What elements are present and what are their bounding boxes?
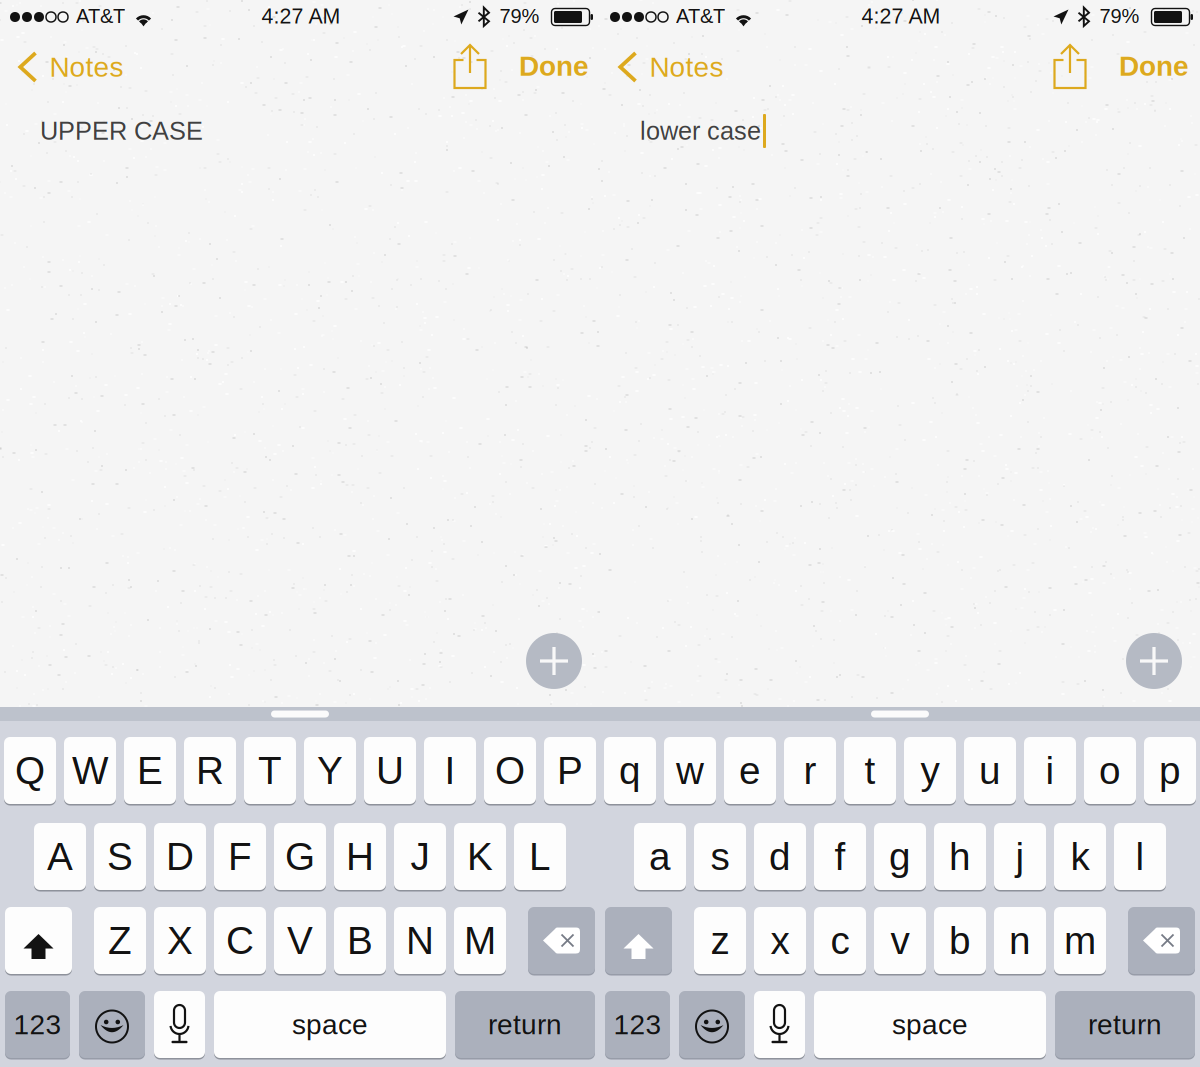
staticText: Done (519, 50, 589, 82)
button[interactable]: o (1084, 735, 1136, 805)
staticText: e (739, 749, 761, 792)
staticText: l (1135, 835, 1144, 878)
staticText: H (346, 835, 374, 878)
button[interactable]: V (274, 905, 326, 975)
button[interactable]: g (874, 821, 926, 891)
button[interactable]: S (94, 821, 146, 891)
button[interactable]: a (634, 821, 686, 891)
button[interactable]: H (334, 821, 386, 891)
button[interactable]: T (244, 735, 296, 805)
staticText: g (889, 835, 911, 878)
button[interactable]: C (214, 905, 266, 975)
button[interactable]: i (1024, 735, 1076, 805)
button[interactable]: q (604, 735, 656, 805)
button[interactable]: k (1054, 821, 1106, 891)
staticText: UPPER CASE (40, 117, 203, 145)
button[interactable]: s (694, 821, 746, 891)
button[interactable]: e (724, 735, 776, 805)
staticText: C (226, 919, 254, 962)
button[interactable]: x (754, 905, 806, 975)
button[interactable]: Z (94, 905, 146, 975)
button[interactable]: z (694, 905, 746, 975)
button[interactable]: Add attachment (1126, 633, 1182, 689)
button[interactable]: Delete (1128, 905, 1195, 975)
staticText: X (167, 919, 193, 962)
button[interactable]: Q (4, 735, 56, 805)
button[interactable]: d (754, 821, 806, 891)
button[interactable]: v (874, 905, 926, 975)
button[interactable]: W (64, 735, 116, 805)
button[interactable]: w (664, 735, 716, 805)
button[interactable]: Delete (528, 905, 595, 975)
button[interactable]: G (274, 821, 326, 891)
button[interactable]: Shift (605, 905, 672, 975)
button[interactable]: N (394, 905, 446, 975)
button[interactable]: F (214, 821, 266, 891)
button[interactable]: J (394, 821, 446, 891)
button[interactable]: M (454, 905, 506, 975)
button[interactable]: u (964, 735, 1016, 805)
button[interactable]: l (1114, 821, 1166, 891)
staticText: Y (317, 749, 343, 792)
button[interactable]: R (184, 735, 236, 805)
staticText: P (557, 749, 583, 792)
button[interactable]: t (844, 735, 896, 805)
button[interactable]: Y (304, 735, 356, 805)
button[interactable]: O (484, 735, 536, 805)
button[interactable]: Done (509, 41, 599, 91)
button[interactable]: Share (445, 35, 494, 97)
button[interactable]: n (994, 905, 1046, 975)
button[interactable]: space (214, 989, 446, 1059)
button[interactable]: Emoji (79, 989, 145, 1059)
button[interactable]: return (1055, 989, 1195, 1059)
staticText: r (803, 749, 816, 792)
staticText: d (769, 835, 791, 878)
button[interactable]: Shift (5, 905, 72, 975)
button[interactable]: A (34, 821, 86, 891)
button[interactable]: 123 (5, 989, 70, 1059)
button[interactable]: X (154, 905, 206, 975)
staticText: space (892, 1009, 968, 1040)
button[interactable]: Dictate (154, 989, 205, 1059)
staticText: q (619, 749, 641, 792)
button[interactable]: Add attachment (526, 633, 582, 689)
button[interactable]: Emoji (679, 989, 745, 1059)
staticText: y (920, 749, 939, 792)
button[interactable]: K (454, 821, 506, 891)
staticText: s (710, 835, 729, 878)
staticText: Notes (49, 51, 123, 83)
button[interactable]: space (814, 989, 1046, 1059)
button[interactable]: y (904, 735, 956, 805)
staticText: W (72, 749, 108, 792)
button[interactable]: P (544, 735, 596, 805)
button[interactable]: f (814, 821, 866, 891)
staticText: 123 (613, 1009, 661, 1040)
button[interactable]: h (934, 821, 986, 891)
button[interactable]: c (814, 905, 866, 975)
button[interactable]: U (364, 735, 416, 805)
button[interactable]: Share (1045, 35, 1094, 97)
button[interactable]: p (1144, 735, 1196, 805)
button[interactable]: Notes (2, 42, 135, 92)
button[interactable]: E (124, 735, 176, 805)
staticText: lower case (640, 117, 761, 145)
button[interactable]: r (784, 735, 836, 805)
staticText: K (467, 835, 493, 878)
button[interactable]: L (514, 821, 566, 891)
button[interactable]: Done (1109, 41, 1199, 91)
staticText: v (890, 919, 909, 962)
button[interactable]: m (1054, 905, 1106, 975)
button[interactable]: B (334, 905, 386, 975)
button[interactable]: return (455, 989, 595, 1059)
staticText: O (495, 749, 525, 792)
button[interactable]: Notes (602, 42, 735, 92)
button[interactable]: I (424, 735, 476, 805)
staticText: A (47, 835, 73, 878)
button[interactable]: 123 (605, 989, 670, 1059)
button[interactable]: D (154, 821, 206, 891)
staticText: k (1070, 835, 1089, 878)
button[interactable]: j (994, 821, 1046, 891)
button[interactable]: b (934, 905, 986, 975)
staticText: U (376, 749, 404, 792)
button[interactable]: Dictate (754, 989, 805, 1059)
